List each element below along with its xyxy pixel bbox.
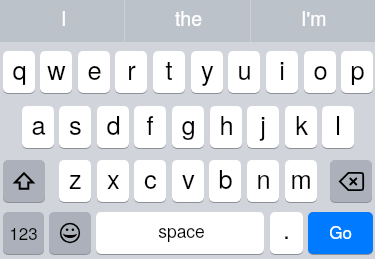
button[interactable]: l (322, 106, 354, 148)
button[interactable]: I (0, 0, 125, 42)
button[interactable]: g (172, 106, 204, 148)
button[interactable]: Emoji keyboard (49, 212, 91, 254)
button[interactable]: I'm (250, 0, 375, 42)
staticText: s (69, 106, 82, 143)
button[interactable]: x (97, 160, 129, 202)
button[interactable]: c (134, 160, 166, 202)
button[interactable]: Backspace (330, 160, 372, 202)
staticText: g (181, 106, 196, 143)
staticText: v (182, 160, 195, 197)
staticText: k (295, 106, 308, 143)
staticText: space (158, 218, 205, 243)
staticText: . (283, 212, 290, 246)
button[interactable]: u (228, 51, 260, 93)
button[interactable]: b (209, 160, 241, 202)
staticText: r (127, 51, 136, 88)
staticText: h (219, 106, 234, 143)
button[interactable]: k (285, 106, 317, 148)
button[interactable]: 123 (3, 212, 44, 254)
staticText: t (165, 51, 173, 88)
button[interactable]: y (191, 51, 223, 93)
button[interactable]: m (285, 160, 317, 202)
button[interactable]: h (210, 106, 242, 148)
staticText: n (256, 160, 271, 197)
staticText: Go (329, 219, 352, 243)
staticText: i (279, 51, 285, 88)
staticText: b (218, 160, 233, 197)
button[interactable]: t (153, 51, 185, 93)
staticText: c (144, 160, 157, 197)
staticText: m (290, 160, 312, 197)
button[interactable]: d (97, 106, 129, 148)
button[interactable]: e (78, 51, 110, 93)
button[interactable]: Shift (3, 160, 45, 202)
button[interactable]: z (59, 160, 91, 202)
staticText: 123 (9, 220, 38, 244)
button[interactable]: o (304, 51, 336, 93)
button[interactable]: space (96, 212, 264, 254)
button[interactable]: a (22, 106, 54, 148)
staticText: a (31, 106, 46, 143)
button[interactable]: n (247, 160, 279, 202)
staticText: the (175, 4, 203, 32)
staticText: x (107, 160, 120, 197)
staticText: I (61, 4, 67, 32)
button[interactable]: s (59, 106, 91, 148)
staticText: y (201, 51, 214, 88)
button[interactable]: j (247, 106, 279, 148)
staticText: w (47, 51, 66, 88)
button[interactable]: p (341, 51, 373, 93)
button[interactable]: the (125, 0, 250, 42)
staticText: p (350, 51, 365, 88)
staticText: f (146, 106, 154, 143)
button[interactable]: q (3, 51, 35, 93)
staticText: d (106, 106, 121, 143)
button[interactable]: r (115, 51, 147, 93)
staticText: I'm (301, 4, 327, 32)
button[interactable]: . (270, 212, 303, 254)
button[interactable]: f (134, 106, 166, 148)
button[interactable]: v (172, 160, 204, 202)
staticText: o (313, 51, 328, 88)
button[interactable]: w (40, 51, 72, 93)
staticText: q (12, 51, 27, 88)
staticText: e (87, 51, 102, 88)
staticText: z (69, 160, 82, 197)
button[interactable]: i (266, 51, 298, 93)
button[interactable]: Go (308, 212, 373, 254)
staticText: l (335, 106, 341, 143)
staticText: j (260, 106, 266, 143)
staticText: u (237, 51, 252, 88)
